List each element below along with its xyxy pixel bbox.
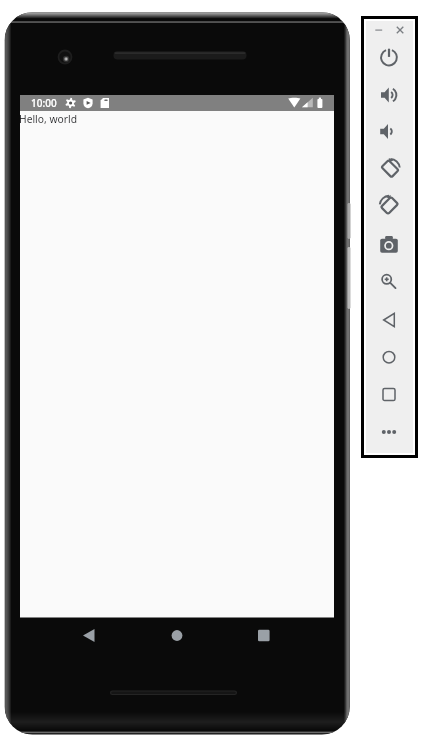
button[interactable]: More: [377, 420, 401, 444]
button[interactable]: Take screenshot: [377, 232, 401, 256]
button[interactable]: Zoom: [377, 268, 401, 292]
button[interactable]: Rotate right: [377, 194, 401, 218]
button[interactable]: Volume down: [377, 120, 401, 144]
button[interactable]: Overview: [377, 382, 401, 406]
button[interactable]: Volume up: [377, 83, 401, 107]
button[interactable]: Home: [377, 345, 401, 369]
button[interactable]: Close: [397, 24, 421, 48]
staticText: Hello, world: [19, 112, 77, 126]
button[interactable]: Back: [377, 308, 401, 332]
button[interactable]: Power: [377, 46, 401, 70]
staticText: 10:00: [31, 96, 57, 110]
button[interactable]: Minimize: [375, 26, 399, 50]
button[interactable]: Rotate left: [377, 157, 401, 181]
button[interactable]: Hello, world: [19, 112, 77, 126]
